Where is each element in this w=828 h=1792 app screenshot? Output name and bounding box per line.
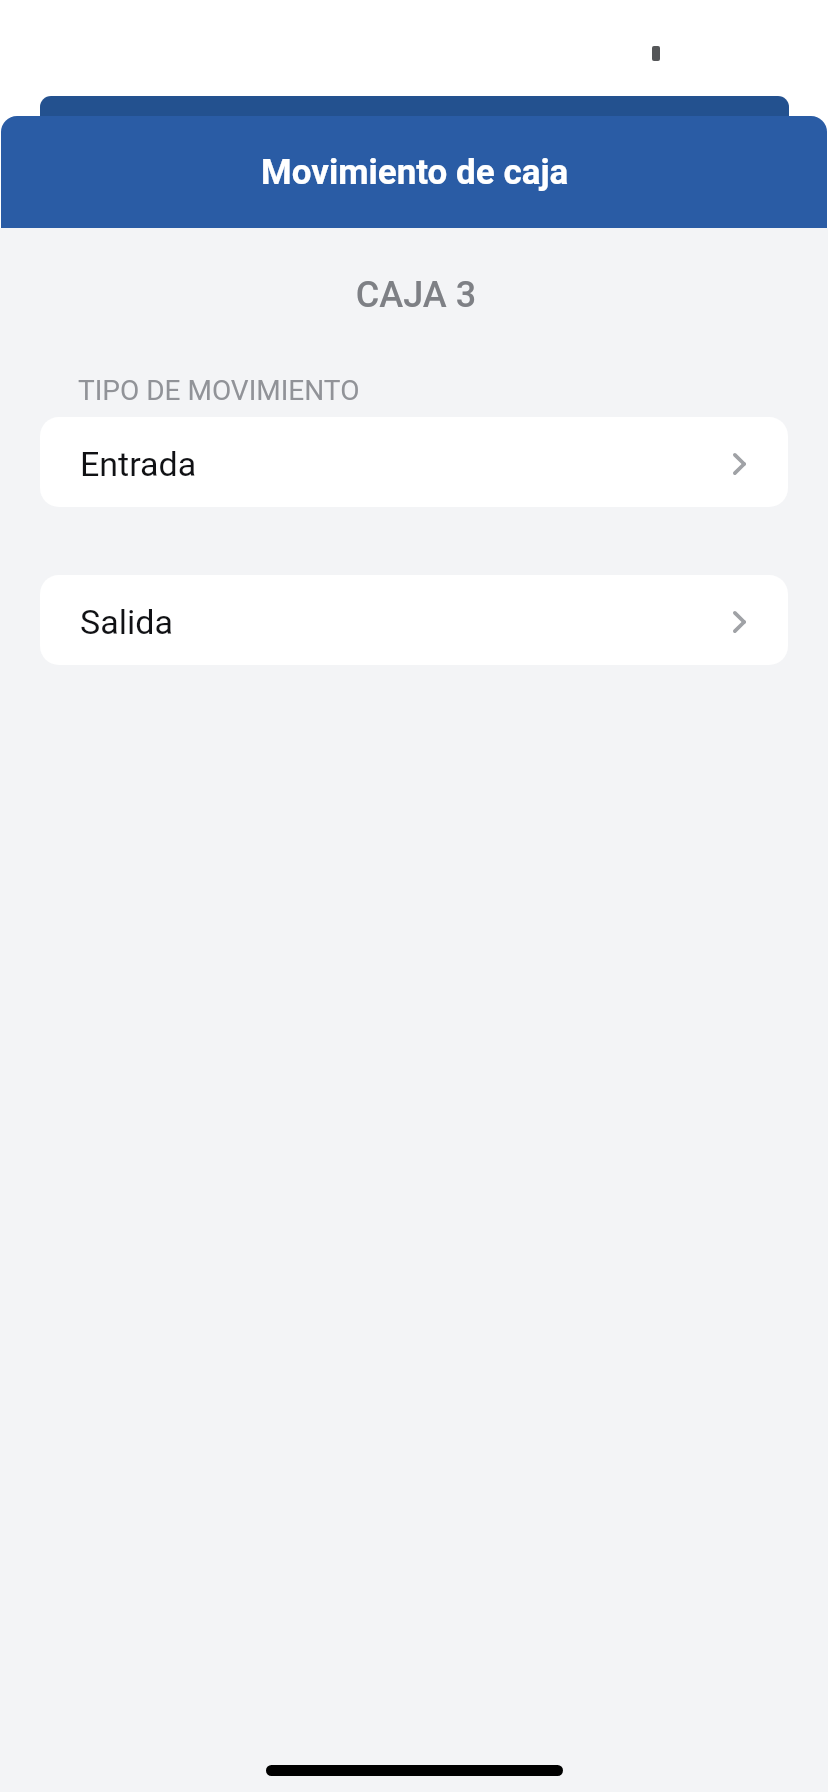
staticText: Salida: [80, 602, 173, 642]
button[interactable]: Salida: [40, 575, 788, 665]
button[interactable]: Entrada: [40, 417, 788, 507]
staticText: CAJA 3: [2, 274, 828, 316]
staticText: TIPO DE MOVIMIENTO: [78, 374, 360, 407]
staticText: Entrada: [80, 444, 197, 484]
other: Abrir Entrada: [733, 453, 746, 475]
staticText: Movimiento de caja: [261, 152, 569, 193]
other: Abrir Salida: [733, 611, 746, 633]
